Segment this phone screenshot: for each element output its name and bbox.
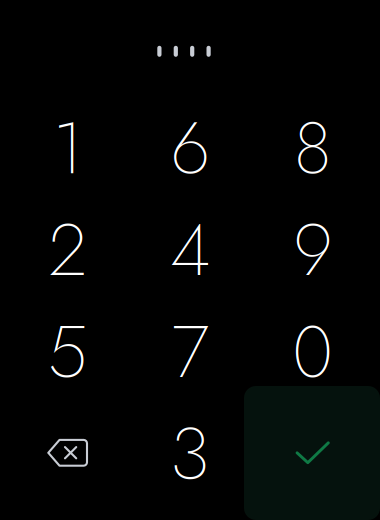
button[interactable]: 7 — [129, 301, 251, 403]
staticText: 9 — [293, 198, 332, 302]
staticText: 5 — [48, 300, 88, 404]
staticText: 7 — [171, 300, 208, 404]
button[interactable]: Confirm — [244, 386, 380, 520]
staticText: 4 — [170, 198, 210, 302]
button[interactable]: 6 — [129, 97, 251, 199]
button[interactable]: 9 — [251, 199, 374, 301]
staticText: 0 — [292, 300, 333, 404]
staticText: 1 — [53, 96, 83, 200]
staticText: 3 — [170, 402, 210, 506]
button[interactable]: 2 — [6, 199, 129, 301]
button[interactable]: 3 — [129, 403, 251, 505]
staticText: 8 — [294, 96, 332, 200]
button[interactable]: Delete — [6, 402, 129, 504]
staticText: 2 — [49, 198, 87, 302]
button[interactable]: 4 — [129, 199, 251, 301]
button[interactable]: 0 — [251, 301, 374, 403]
staticText: 6 — [170, 96, 209, 200]
button[interactable]: 1 — [6, 97, 129, 199]
button[interactable]: 5 — [6, 301, 129, 403]
button[interactable]: 8 — [251, 97, 374, 199]
